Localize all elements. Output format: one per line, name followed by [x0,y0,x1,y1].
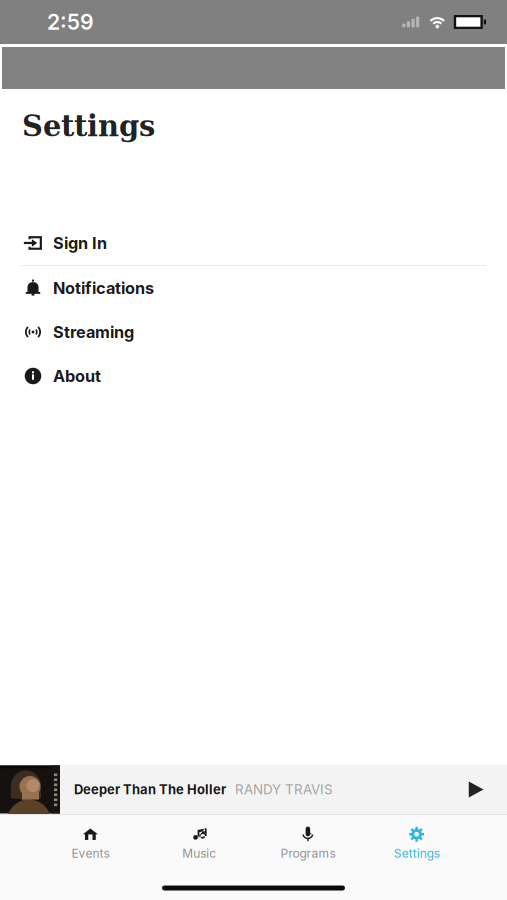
staticText: Streaming [53,322,134,342]
button[interactable]: Deeper Than The Holler [0,765,507,814]
button[interactable]: Programs [253,819,362,866]
button[interactable]: Music [145,819,254,866]
staticText: Notifications [53,278,154,298]
button[interactable]: Notifications [0,266,507,310]
button[interactable]: Events [36,819,145,866]
staticText: Settings [22,109,155,143]
staticText: Music [182,846,216,861]
staticText: 2:59 [47,9,94,35]
staticText: Programs [280,846,335,861]
staticText: About [53,366,101,386]
staticText: Events [71,846,109,861]
button[interactable]: Settings [362,819,471,866]
staticText: Sign In [53,233,107,253]
staticText: RANDY TRAVIS [235,781,333,797]
staticText: Settings [394,846,440,861]
button[interactable]: Streaming [0,310,507,354]
button[interactable]: Sign In [0,221,507,265]
button[interactable]: About [0,354,507,398]
staticText: Deeper Than The Holler [74,782,226,797]
